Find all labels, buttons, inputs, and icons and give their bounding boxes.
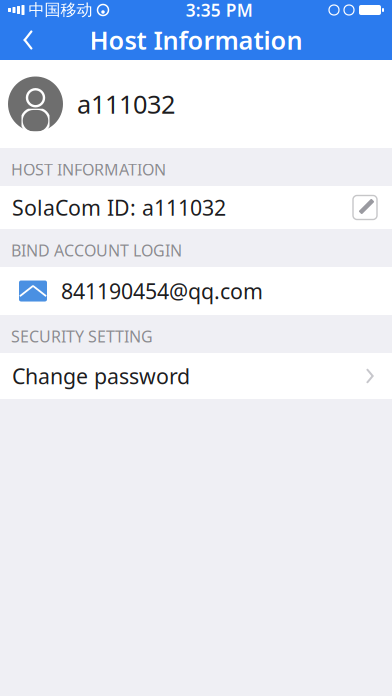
staticText: Change password xyxy=(12,362,190,390)
staticText: 中国移动 xyxy=(28,0,92,20)
staticText: Host Information xyxy=(89,23,302,57)
button[interactable]: a111032 xyxy=(0,60,392,148)
button[interactable]: 841190454@qq.com xyxy=(0,267,392,315)
button[interactable]: Back xyxy=(6,20,50,60)
staticText: HOST INFORMATION xyxy=(11,159,166,180)
staticText: 3:35 PM xyxy=(186,0,253,21)
staticText: SECURITY SETTING xyxy=(11,326,153,347)
staticText: SolaCom ID: a111032 xyxy=(12,193,226,222)
button[interactable]: Change password xyxy=(0,353,392,399)
button[interactable]: SolaCom ID: a111032 xyxy=(0,186,392,229)
staticText: a111032 xyxy=(77,87,175,121)
staticText: 841190454@qq.com xyxy=(61,277,263,305)
staticText: BIND ACCOUNT LOGIN xyxy=(11,240,182,261)
